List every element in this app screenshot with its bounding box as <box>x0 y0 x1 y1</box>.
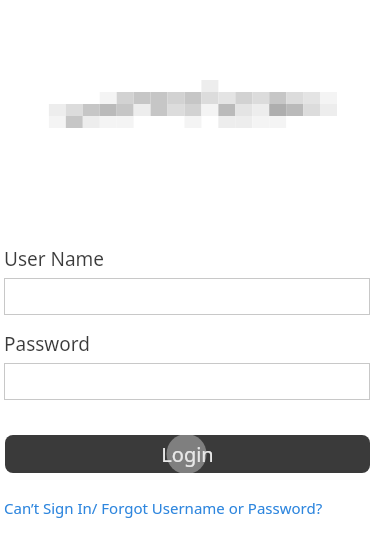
staticText: Password <box>4 331 90 357</box>
staticText: Can’t Sign In/ Forgot Username or Passwo… <box>4 498 323 518</box>
staticText: Login <box>161 441 214 468</box>
button[interactable]: Can’t Sign In/ Forgot Username or Passwo… <box>4 498 323 518</box>
button[interactable]: Login <box>5 435 370 473</box>
button[interactable]: User Name input <box>4 278 370 315</box>
other: Company logo <box>15 80 337 128</box>
staticText: User Name <box>4 246 105 272</box>
button[interactable]: Password input <box>4 363 370 400</box>
